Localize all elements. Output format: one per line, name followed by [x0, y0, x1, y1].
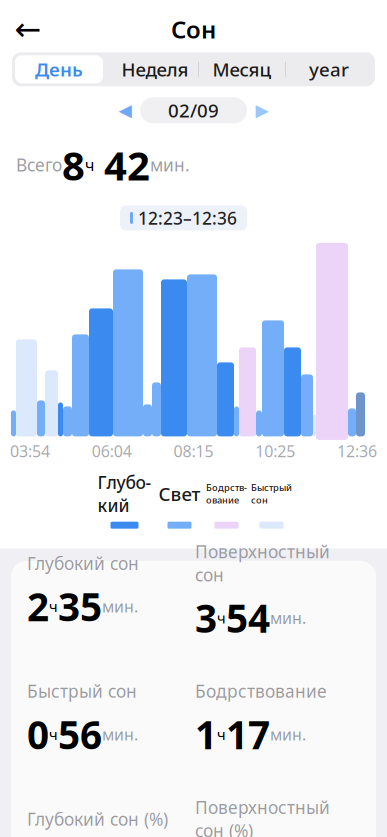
staticText: ←	[14, 11, 41, 47]
staticText: Глубокий сон	[27, 552, 139, 575]
staticText: Поверхностный сон	[195, 540, 330, 586]
staticText: Всего	[16, 153, 62, 176]
staticText: День	[35, 57, 83, 82]
staticText: Месяц	[212, 57, 271, 82]
staticText: Быстрый сон	[27, 679, 137, 702]
staticText: 17	[226, 708, 270, 760]
staticText: 03:54	[10, 440, 50, 462]
staticText: 8	[62, 138, 85, 191]
staticText: 0	[27, 708, 49, 760]
staticText: Быстрый сон	[251, 481, 292, 506]
staticText: ◀	[118, 100, 131, 120]
staticText: 2	[27, 581, 49, 632]
staticText: 10:25	[255, 440, 295, 462]
staticText: мин.	[102, 596, 138, 617]
staticText: Глубокий сон (%)	[27, 807, 168, 830]
staticText: year	[309, 57, 349, 82]
staticText: мин.	[150, 153, 190, 176]
staticText: 06:04	[92, 440, 132, 462]
staticText: мин.	[102, 724, 138, 745]
staticText: 42	[94, 138, 150, 191]
staticText: мин.	[270, 607, 306, 628]
staticText: мин.	[270, 724, 306, 745]
staticText: ч	[217, 724, 226, 744]
staticText: Неделя	[121, 57, 188, 82]
staticText: 08:15	[173, 440, 213, 462]
staticText: Бодрствование	[195, 679, 327, 702]
staticText: Глубокий	[97, 471, 151, 517]
staticText: 56	[58, 708, 102, 760]
staticText: 12:36	[337, 440, 377, 462]
button[interactable]: Next day	[247, 96, 277, 124]
staticText: 35	[58, 581, 102, 632]
staticText: Поверхностный сон (%)	[195, 796, 330, 837]
button[interactable]: 02/09	[140, 97, 247, 123]
staticText: Бодрствование	[206, 481, 247, 506]
staticText: 1	[195, 708, 217, 760]
button[interactable]: Back	[6, 9, 50, 49]
staticText: 02/09	[168, 98, 219, 123]
staticText: Свет	[158, 481, 200, 506]
staticText: ч	[49, 597, 58, 616]
staticText: 12:23–12:36	[138, 206, 237, 229]
staticText: ▶	[255, 100, 268, 120]
staticText: 3	[195, 592, 217, 643]
button[interactable]: Месяц	[199, 55, 285, 83]
staticText: ч	[217, 608, 226, 628]
button[interactable]: День	[15, 55, 103, 83]
staticText: ч	[85, 154, 94, 175]
button[interactable]: year	[286, 55, 372, 83]
staticText: ч	[49, 724, 58, 744]
staticText: Сон	[171, 13, 216, 45]
button[interactable]: Previous day	[110, 96, 140, 124]
staticText: 54	[226, 592, 270, 643]
button[interactable]: Неделя	[112, 55, 198, 83]
